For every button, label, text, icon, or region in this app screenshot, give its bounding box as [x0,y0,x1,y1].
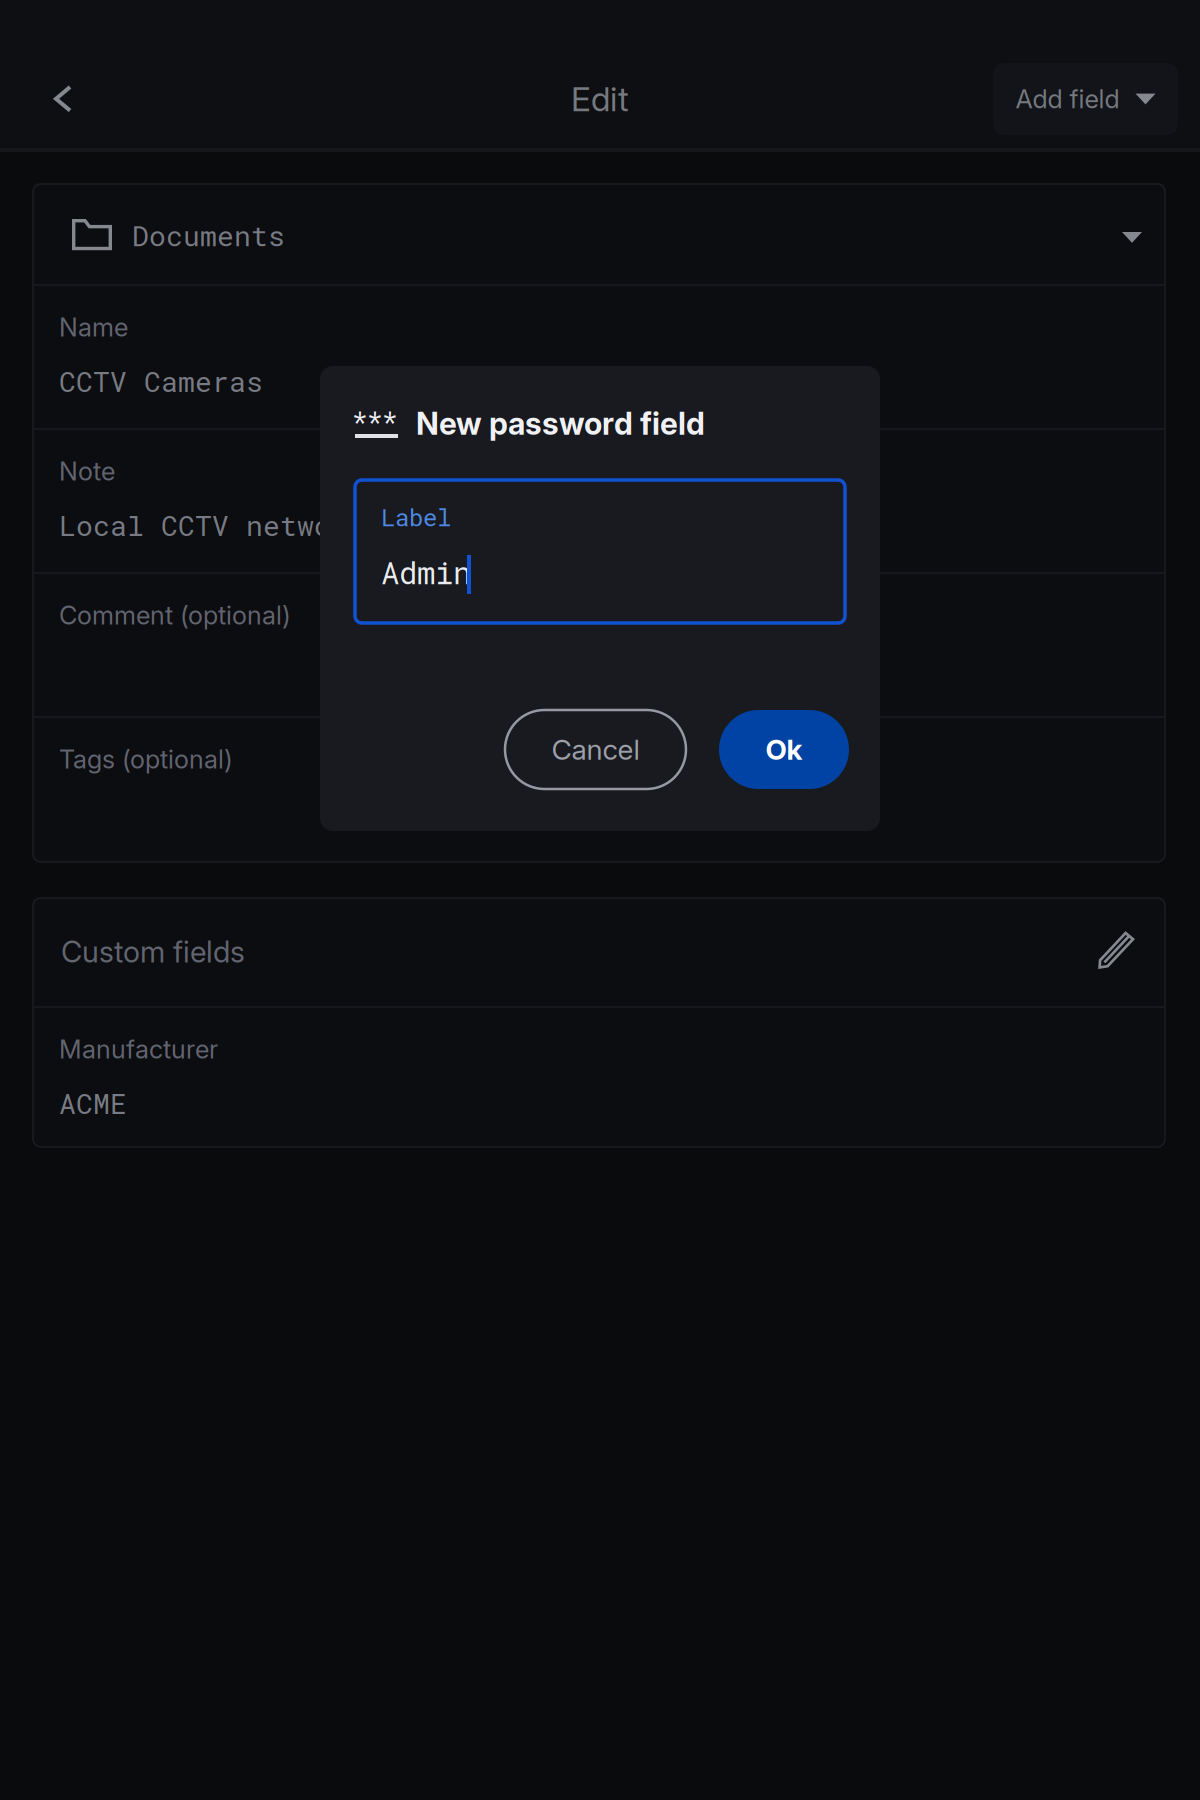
staticText: Admin [381,552,471,592]
button[interactable]: Edit custom fields [1087,921,1145,979]
staticText: Comment (optional) [59,600,291,631]
staticText: CCTV Cameras [59,363,263,400]
staticText: New password field [416,405,705,442]
staticText: Note [59,456,115,487]
button[interactable]: Add field [993,63,1178,135]
staticText: Local CCTV network [59,507,365,544]
staticText: ACME [59,1085,127,1122]
staticText: Label [381,501,451,533]
button[interactable]: Cancel [505,710,686,789]
staticText: Manufacturer [59,1034,218,1065]
staticText: Edit [571,79,629,119]
staticText: Tags (optional) [59,744,233,775]
staticText: Ok [765,733,802,766]
staticText: Add field [1015,84,1119,114]
staticText: Documents [132,217,285,254]
staticText: Name [59,312,128,343]
staticText: Custom fields [61,934,245,969]
button[interactable]: Ok [719,710,849,789]
staticText: *** [352,404,397,437]
button[interactable]: Back [0,50,115,148]
button[interactable]: Documents [33,183,1165,284]
staticText: Cancel [551,733,639,766]
